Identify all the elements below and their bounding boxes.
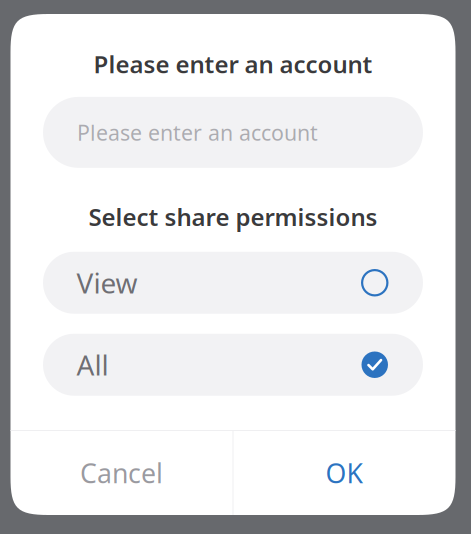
button[interactable]: Cancel	[10, 431, 232, 515]
staticText: Select share permissions	[88, 201, 377, 233]
staticText: OK	[325, 455, 363, 491]
staticText: Please enter an account	[77, 118, 318, 146]
button[interactable]: Please enter an account	[43, 97, 423, 168]
staticText: View	[76, 264, 137, 301]
staticText: All	[76, 346, 108, 383]
staticText: Cancel	[80, 455, 163, 491]
staticText: Please enter an account	[93, 48, 372, 80]
button[interactable]: OK	[233, 431, 455, 515]
button[interactable]: View	[43, 252, 423, 314]
button[interactable]: All	[43, 334, 423, 396]
